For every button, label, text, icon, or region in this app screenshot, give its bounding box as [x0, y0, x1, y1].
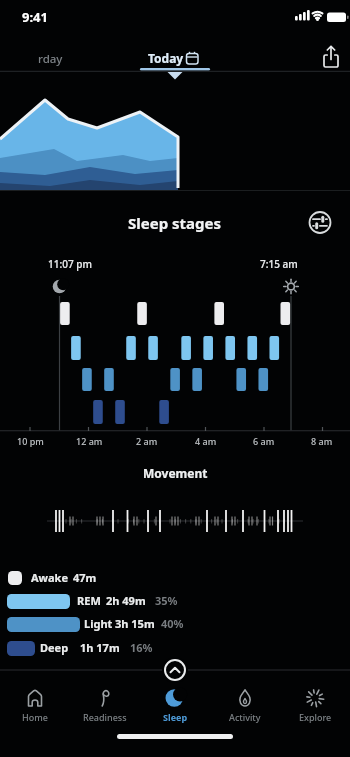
button[interactable] [0, 44, 110, 72]
staticText: Readiness [83, 711, 127, 723]
staticText: 2 am [136, 435, 158, 447]
staticText: 12 am [76, 435, 103, 447]
button[interactable]: Awake [0, 570, 350, 587]
button[interactable]: Sleep [140, 686, 210, 723]
button[interactable]: Readiness [70, 686, 140, 723]
button[interactable] [304, 206, 337, 239]
staticText: Home [22, 711, 48, 723]
staticText: Sleep [163, 711, 188, 723]
staticText: 11:07 pm [48, 257, 92, 271]
staticText: Sleep stages [128, 213, 222, 233]
button[interactable] [159, 654, 191, 686]
staticText: 4 am [195, 435, 217, 447]
button[interactable]: Home [0, 686, 70, 723]
staticText: 3h 15m [115, 616, 155, 631]
staticText: 10 pm [17, 435, 44, 447]
staticText: Activity [229, 711, 261, 723]
button[interactable] [130, 44, 210, 72]
staticText: 9:41 [22, 8, 48, 26]
staticText: Deep [40, 640, 69, 655]
staticText: 7:15 am [260, 257, 298, 271]
button[interactable] [314, 42, 348, 72]
staticText: Movement [143, 465, 208, 481]
staticText: 47m [73, 570, 97, 585]
staticText: Awake [31, 570, 69, 585]
staticText: 35% [155, 593, 178, 608]
staticText: Today [148, 50, 184, 66]
staticText: 40% [161, 616, 184, 631]
button[interactable]: Light [0, 616, 350, 633]
button[interactable]: REM [0, 593, 350, 610]
staticText: Explore [299, 711, 332, 723]
staticText: 1h 17m [80, 640, 120, 655]
button[interactable]: Deep [0, 640, 350, 657]
staticText: rday [38, 51, 63, 67]
staticText: Light [84, 616, 113, 631]
button[interactable]: Activity [210, 686, 280, 723]
staticText: 8 am [311, 435, 333, 447]
staticText: 16% [130, 640, 153, 655]
staticText: REM [77, 593, 101, 608]
staticText: 6 am [253, 435, 275, 447]
button[interactable]: Explore [280, 686, 350, 723]
staticText: 2h 49m [106, 593, 146, 608]
